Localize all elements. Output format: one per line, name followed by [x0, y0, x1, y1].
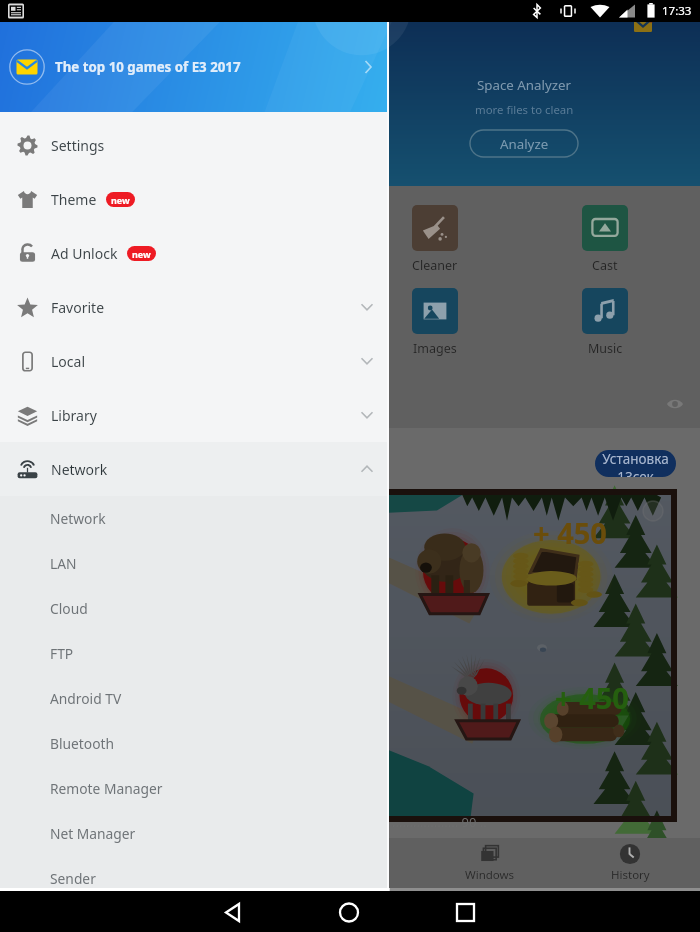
button[interactable]: History [560, 838, 700, 888]
staticText: Bluetooth [50, 734, 115, 753]
button[interactable]: Sender [0, 856, 389, 901]
button[interactable]: FTP [0, 631, 389, 676]
staticText: Network [51, 460, 108, 479]
staticText: Local [51, 352, 85, 371]
button[interactable]: Cast [565, 205, 645, 274]
staticText: new [132, 248, 151, 260]
staticText: + 450 [533, 513, 607, 552]
staticText: ................... 90 .. [392, 813, 487, 831]
staticText: The top 10 games of E3 2017 [55, 58, 241, 76]
staticText: FTP [50, 644, 74, 663]
staticText: Images [413, 340, 457, 357]
staticText: Favorite [51, 298, 105, 317]
button[interactable]: The top 10 games of E3 2017 [0, 22, 389, 112]
staticText: new [111, 194, 130, 206]
button[interactable]: Home [325, 888, 373, 932]
button[interactable]: Network [0, 442, 389, 496]
button[interactable]: Analyze [470, 130, 578, 157]
staticText: Space Analyzer [477, 76, 571, 94]
button[interactable]: Android TV [0, 676, 389, 721]
button[interactable]: Remote Manager [0, 766, 389, 811]
button[interactable]: Local [0, 334, 389, 388]
staticText: Cloud [50, 599, 88, 618]
button[interactable]: Net Manager [0, 811, 389, 856]
staticText: more files to clean [475, 102, 574, 118]
staticText: Cleaner [412, 257, 458, 274]
button[interactable]: Tools [280, 838, 420, 888]
staticText: Android TV [50, 689, 122, 708]
button[interactable]: Messages [628, 12, 658, 42]
staticText: Cast [592, 257, 618, 274]
staticText: 17:33 [662, 3, 692, 19]
button[interactable]: Music [565, 288, 645, 357]
button[interactable]: Network [0, 496, 389, 541]
button[interactable]: Library [0, 388, 389, 442]
staticText: Net Manager [50, 824, 136, 843]
button[interactable]: Установка 13сек [595, 450, 676, 477]
button[interactable]: Recent apps [441, 888, 489, 932]
button[interactable]: Theme [0, 172, 389, 226]
button[interactable]: Favorite [0, 280, 389, 334]
button[interactable]: LAN [0, 541, 389, 586]
button[interactable]: Cloud [0, 586, 389, 631]
staticText: Library [51, 406, 97, 425]
staticText: Settings [51, 136, 105, 155]
button[interactable]: Images [395, 288, 475, 357]
staticText: + 450 [555, 678, 629, 717]
button[interactable]: Show hidden [666, 395, 684, 413]
staticText: LAN [50, 554, 77, 573]
button[interactable]: Ad Unlock [0, 226, 389, 280]
button[interactable]: Cleaner [395, 205, 475, 274]
staticText: Files [58, 867, 82, 883]
staticText: Music [588, 340, 623, 357]
button[interactable]: Back [210, 888, 258, 932]
staticText: Network [50, 509, 106, 528]
staticText: History [611, 867, 650, 883]
staticText: Analyze [500, 135, 549, 153]
staticText: Установка 13сек [595, 450, 676, 477]
staticText: Remote Manager [50, 779, 163, 798]
button[interactable]: Bluetooth [0, 721, 389, 766]
button[interactable]: Settings [0, 118, 389, 172]
staticText: Sender [50, 869, 96, 888]
button[interactable]: Files [0, 838, 140, 888]
staticText: Windows [465, 867, 515, 883]
staticText: Ad Unlock [51, 244, 118, 263]
button[interactable]: Windows [420, 838, 560, 888]
staticText: Theme [51, 190, 97, 209]
